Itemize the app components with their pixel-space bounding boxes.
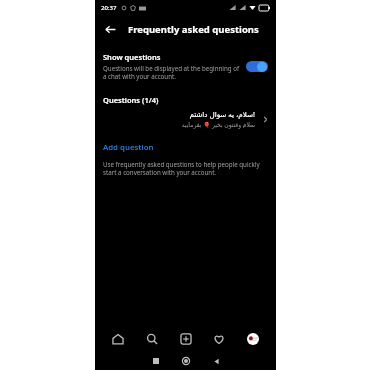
staticText: 20:37 [101, 4, 117, 12]
button[interactable]: Recents [141, 352, 171, 370]
button[interactable]: Home [171, 352, 201, 370]
staticText: Frequently asked questions [128, 23, 259, 36]
button[interactable]: Profile [240, 327, 266, 351]
staticText: Questions (1/4) [103, 95, 159, 105]
staticText: Show questions [103, 52, 161, 62]
button[interactable]: Back [201, 352, 231, 370]
button[interactable]: Create [173, 327, 199, 351]
button[interactable]: Back [99, 18, 121, 40]
staticText: Use frequently asked questions to help p… [103, 160, 268, 176]
button[interactable]: Activity [206, 327, 232, 351]
staticText: Questions will be displayed at the begin… [103, 64, 240, 80]
staticText: سلام وقتتون بخیر 🎈 بفرمایید [181, 121, 255, 129]
button[interactable]: Add question [95, 140, 276, 155]
staticText: سلام، یه سوال داشتم! [189, 109, 255, 119]
staticText: Add question [103, 142, 154, 153]
button[interactable]: Show questions toggle [246, 61, 268, 72]
button[interactable]: Home [105, 327, 131, 351]
button[interactable]: سلام، یه سوال داشتم! [95, 105, 276, 133]
button[interactable]: Show questions [95, 49, 276, 83]
button[interactable]: Search [139, 327, 165, 351]
